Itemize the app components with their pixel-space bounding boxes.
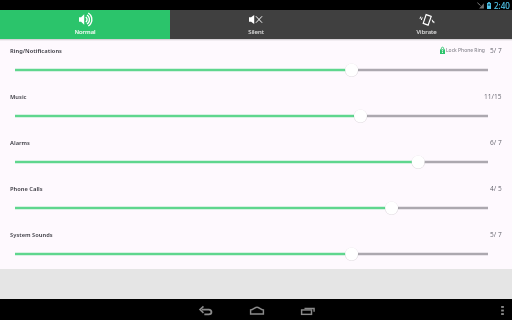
staticText: Ring/Notifications xyxy=(10,47,62,55)
button[interactable]: Music xyxy=(0,85,512,131)
staticText: 5/ 7 xyxy=(490,230,502,239)
staticText: 6/ 7 xyxy=(490,138,502,147)
staticText: 2:40 xyxy=(494,0,510,10)
button[interactable]: System Sounds xyxy=(0,223,512,269)
button[interactable]: Ring/Notifications xyxy=(0,39,512,85)
staticText: 11/15 xyxy=(484,92,502,101)
staticText: 4/ 5 xyxy=(490,184,502,193)
staticText: Alarms xyxy=(10,139,30,147)
staticText: Lock Phone Ring xyxy=(446,47,485,54)
button[interactable]: Recents xyxy=(282,299,333,320)
staticText: Vibrate xyxy=(416,28,437,36)
button[interactable]: Vibrate xyxy=(341,10,512,39)
staticText: Phone Calls xyxy=(10,185,43,193)
button[interactable]: Back xyxy=(180,299,231,320)
button[interactable]: Silent xyxy=(170,10,341,39)
button[interactable]: More options xyxy=(492,299,512,320)
button[interactable]: Home xyxy=(231,299,282,320)
button[interactable]: Phone Calls xyxy=(0,177,512,223)
staticText: System Sounds xyxy=(10,231,53,239)
staticText: Silent xyxy=(248,28,264,36)
staticText: Music xyxy=(10,93,27,101)
button[interactable]: Alarms xyxy=(0,131,512,177)
button[interactable]: Normal xyxy=(0,10,170,39)
staticText: 5/ 7 xyxy=(490,46,502,55)
staticText: Normal xyxy=(74,28,96,36)
